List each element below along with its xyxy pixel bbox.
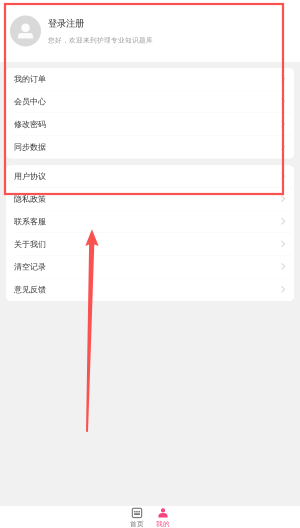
staticText: 联系客服	[14, 217, 46, 226]
staticText: 隐私政策	[14, 194, 46, 204]
button[interactable]: 同步数据	[6, 136, 294, 158]
button[interactable]: 用户协议	[6, 165, 294, 188]
staticText: 关于我们	[14, 239, 46, 249]
staticText: 会员中心	[14, 97, 46, 106]
button[interactable]: 关于我们	[6, 233, 294, 256]
staticText: 同步数据	[14, 142, 46, 152]
button[interactable]: 联系客服	[6, 211, 294, 233]
button[interactable]: 我的订单	[6, 68, 294, 91]
button[interactable]: 修改密码	[6, 113, 294, 136]
button[interactable]: 隐私政策	[6, 188, 294, 211]
button[interactable]: 我的	[150, 506, 176, 528]
staticText: 我的	[156, 520, 170, 528]
staticText: 修改密码	[14, 119, 46, 129]
button[interactable]: 登录注册	[0, 0, 300, 62]
staticText: 清空记录	[14, 262, 46, 272]
button[interactable]: 会员中心	[6, 91, 294, 113]
staticText: 登录注册	[48, 18, 84, 29]
button[interactable]: 清空记录	[6, 256, 294, 278]
staticText: 我的订单	[14, 74, 46, 84]
button[interactable]: 首页	[124, 506, 150, 528]
staticText: 用户协议	[14, 171, 46, 181]
button[interactable]: 意见反馈	[6, 278, 294, 301]
staticText: 首页	[130, 520, 144, 528]
staticText: 您好，欢迎来到护理专业知识题库	[48, 36, 153, 44]
staticText: 意见反馈	[14, 285, 46, 295]
